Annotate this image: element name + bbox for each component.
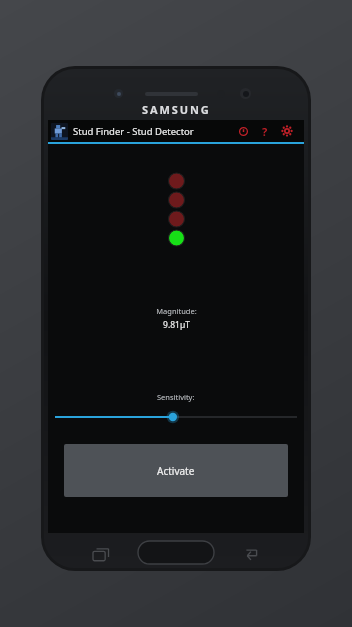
button[interactable]: Activate (64, 444, 288, 497)
staticText: Sensitivity: (157, 392, 195, 402)
button[interactable]: Help (254, 120, 276, 142)
staticText: Activate (157, 464, 195, 478)
other: Back (244, 547, 259, 561)
staticText: 9.81µT (163, 319, 190, 331)
other: Recent apps (93, 548, 109, 561)
staticText: Magnitude: (156, 306, 197, 316)
button[interactable]: Sensitivity slider (48, 408, 304, 426)
button[interactable]: Info (232, 120, 254, 142)
other: Home (138, 541, 214, 564)
staticText: Stud Finder - Stud Detector (73, 125, 194, 138)
button[interactable]: Settings (276, 120, 298, 142)
staticText: ? (262, 124, 268, 139)
staticText: SAMSUNG (142, 102, 211, 117)
